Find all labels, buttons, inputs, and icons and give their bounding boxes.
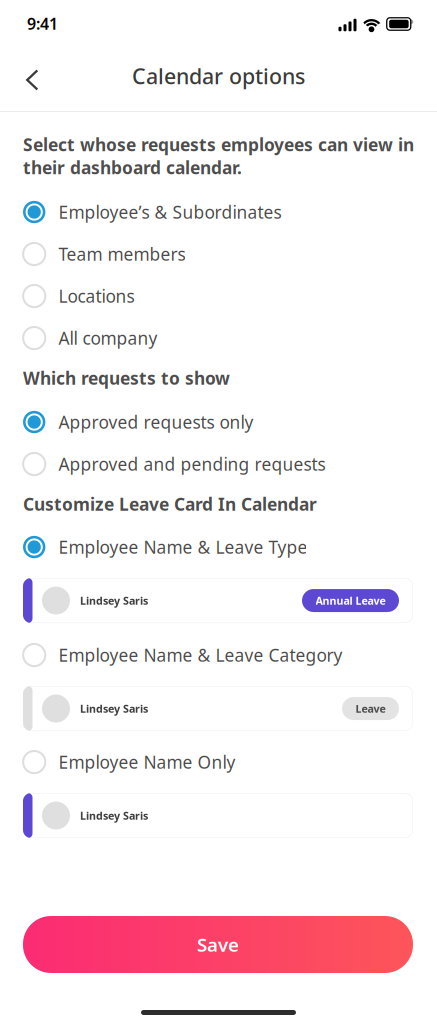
- button[interactable]: Approved and pending requests: [0, 443, 437, 485]
- button[interactable]: Employee’s & Subordinates: [0, 191, 437, 233]
- staticText: Annual Leave: [315, 593, 385, 608]
- staticText: Employee Name & Leave Type: [58, 535, 307, 558]
- button[interactable]: All company: [0, 317, 437, 359]
- staticText: Lindsey Saris: [80, 808, 148, 823]
- button[interactable]: Save: [0, 916, 437, 973]
- staticText: 9:41: [27, 13, 58, 34]
- button[interactable]: Employee Name Only: [0, 741, 437, 783]
- staticText: Team members: [58, 242, 185, 265]
- staticText: Select whose requests employees can view…: [23, 133, 414, 179]
- button[interactable]: Back: [0, 55, 57, 104]
- staticText: Locations: [58, 284, 134, 307]
- staticText: Customize Leave Card In Calendar: [23, 492, 317, 515]
- staticText: Employee’s & Subordinates: [58, 200, 281, 223]
- staticText: Calendar options: [132, 62, 305, 90]
- staticText: Save: [197, 932, 239, 957]
- staticText: Employee Name Only: [58, 750, 235, 773]
- button[interactable]: Employee Name & Leave Type: [0, 526, 437, 568]
- button[interactable]: Team members: [0, 233, 437, 275]
- staticText: Lindsey Saris: [80, 593, 148, 608]
- staticText: Leave: [355, 701, 385, 716]
- staticText: Employee Name & Leave Category: [58, 643, 342, 666]
- staticText: Which requests to show: [23, 366, 230, 389]
- staticText: All company: [58, 326, 157, 349]
- staticText: Lindsey Saris: [80, 701, 148, 716]
- button[interactable]: Employee Name & Leave Category: [0, 634, 437, 676]
- button[interactable]: Locations: [0, 275, 437, 317]
- button[interactable]: Approved requests only: [0, 401, 437, 443]
- staticText: Approved requests only: [58, 410, 253, 433]
- staticText: Approved and pending requests: [58, 452, 325, 475]
